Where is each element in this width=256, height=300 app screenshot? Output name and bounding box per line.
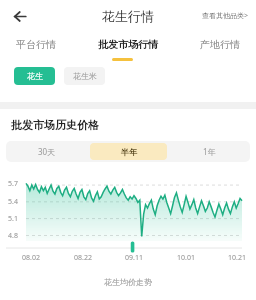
button[interactable]: 1年 (171, 143, 248, 160)
button[interactable]: 花生米 (64, 67, 105, 85)
button[interactable]: 花生 (14, 67, 55, 85)
button[interactable]: 查看其他品类> (199, 6, 252, 26)
button[interactable]: 平台行情 (14, 34, 58, 55)
staticText: 10.01 (177, 253, 195, 263)
staticText: 查看其他品类> (202, 11, 249, 21)
staticText: 5.4 (8, 197, 18, 207)
staticText: 5.7 (8, 179, 18, 189)
button[interactable]: Back (6, 3, 32, 29)
staticText: 产地行情 (200, 38, 240, 51)
staticText: 4.8 (8, 231, 18, 241)
staticText: 平台行情 (16, 38, 56, 51)
staticText: 花生 (27, 71, 43, 81)
button[interactable]: 产地行情 (198, 34, 242, 55)
staticText: 半年 (121, 147, 137, 157)
staticText: 批发市场历史价格 (11, 118, 99, 132)
staticText: 1年 (203, 146, 216, 157)
staticText: 08.02 (22, 253, 40, 263)
button[interactable]: 批发市场行情 (96, 34, 160, 55)
staticText: 08.22 (74, 253, 92, 263)
staticText: 花生米 (73, 71, 97, 81)
button[interactable]: 30天 (8, 143, 86, 160)
staticText: 花生均价走势 (0, 277, 256, 287)
staticText: 5.1 (8, 214, 18, 224)
button[interactable]: 半年 (90, 143, 167, 160)
staticText: 09.11 (125, 253, 143, 263)
staticText: 花生行情 (102, 8, 154, 24)
staticText: 30天 (38, 146, 56, 157)
staticText: 10.21 (228, 253, 246, 263)
staticText: 批发市场行情 (98, 38, 158, 51)
